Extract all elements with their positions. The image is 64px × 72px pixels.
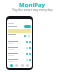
button[interactable]: Send money xyxy=(24,25,31,28)
button[interactable] xyxy=(8,29,31,33)
button[interactable]: Tab 3 xyxy=(26,64,29,67)
button[interactable]: Tab 0 xyxy=(10,64,13,67)
button[interactable]: Tab 2 xyxy=(21,64,24,67)
button[interactable] xyxy=(8,57,31,63)
staticText: Pay the smart way every day xyxy=(12,8,53,12)
button[interactable] xyxy=(8,45,31,51)
button[interactable] xyxy=(8,39,31,45)
staticText: MoniPay xyxy=(19,1,45,9)
button[interactable] xyxy=(8,51,31,57)
button[interactable]: Tab 1 xyxy=(15,64,18,67)
